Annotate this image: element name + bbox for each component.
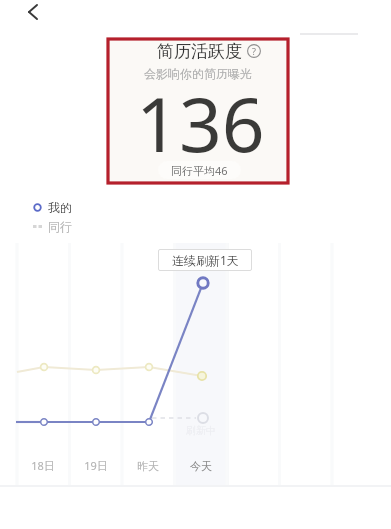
button[interactable]: 18日 <box>17 458 69 473</box>
staticText: 会影响你的简历曝光 <box>144 66 252 81</box>
button[interactable]: 19日 <box>70 458 122 473</box>
staticText: 昨天 <box>137 459 159 473</box>
staticText: 简历活跃度 <box>157 41 242 60</box>
staticText: 刷新中 <box>186 424 216 437</box>
button[interactable]: 今天 <box>175 458 227 473</box>
staticText: 18日 <box>31 458 55 473</box>
staticText: 我的 <box>48 200 72 215</box>
staticText: 今天 <box>190 459 212 473</box>
button[interactable]: 简历活跃度 <box>157 41 261 60</box>
staticText: ? <box>252 45 256 57</box>
staticText: 同行平均46 <box>171 163 228 178</box>
button[interactable]: 同行 <box>33 219 72 234</box>
staticText: 136 <box>136 72 265 166</box>
button[interactable]: 昨天 <box>122 458 174 473</box>
button[interactable]: 连续刷新1天 <box>158 249 252 271</box>
button[interactable]: 我的 <box>33 200 72 215</box>
staticText: 19日 <box>84 458 108 473</box>
staticText: 连续刷新1天 <box>172 252 239 268</box>
other: Help <box>247 44 261 58</box>
staticText: 同行 <box>48 219 72 234</box>
button[interactable]: 同行平均46 <box>158 161 241 179</box>
button[interactable]: Back <box>17 0 49 32</box>
